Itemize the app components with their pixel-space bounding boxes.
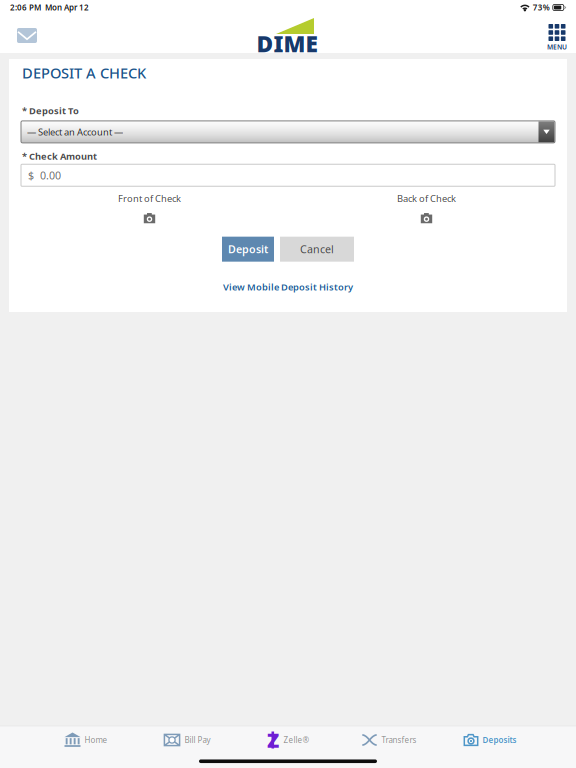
button[interactable]: Messages: [0, 15, 54, 53]
button[interactable]: — Select an Account —: [21, 121, 555, 143]
staticText: — Select an Account —: [27, 126, 123, 138]
staticText: View Mobile Deposit History: [223, 281, 353, 293]
button[interactable]: Transfers: [338, 725, 439, 754]
button[interactable]: Bill Pay: [136, 725, 237, 754]
staticText: Deposit: [228, 242, 268, 256]
staticText: MENU: [547, 42, 567, 51]
button[interactable]: $: [21, 164, 555, 186]
staticText: Home: [84, 735, 107, 745]
button[interactable]: Front of Check: [139, 213, 159, 224]
staticText: 0.00: [40, 168, 61, 182]
staticText: Bill Pay: [184, 735, 210, 745]
button[interactable]: Menu: [543, 15, 576, 53]
staticText: Transfers: [381, 735, 416, 745]
button[interactable]: Deposit: [222, 237, 274, 262]
button[interactable]: Deposits: [439, 725, 540, 754]
staticText: * Deposit To: [22, 104, 79, 117]
button[interactable]: View Mobile Deposit History: [9, 276, 567, 298]
button[interactable]: Back of Check: [416, 213, 436, 224]
staticText: DEPOSIT A CHECK: [22, 63, 146, 82]
staticText: DIME: [256, 28, 317, 58]
staticText: 2:06 PM: [10, 2, 41, 13]
staticText: 73%: [533, 2, 550, 13]
staticText: Zelle®: [283, 735, 309, 745]
staticText: Mon Apr 12: [41, 2, 89, 13]
button[interactable]: Z: [237, 725, 338, 754]
staticText: Back of Check: [397, 192, 456, 205]
staticText: Cancel: [300, 242, 334, 256]
staticText: * Check Amount: [22, 150, 97, 162]
staticText: $: [28, 168, 34, 182]
button[interactable]: Home: [35, 725, 136, 754]
staticText: Deposits: [482, 735, 516, 745]
staticText: Z: [267, 727, 279, 753]
button[interactable]: Cancel: [280, 237, 354, 262]
staticText: Front of Check: [118, 192, 181, 205]
